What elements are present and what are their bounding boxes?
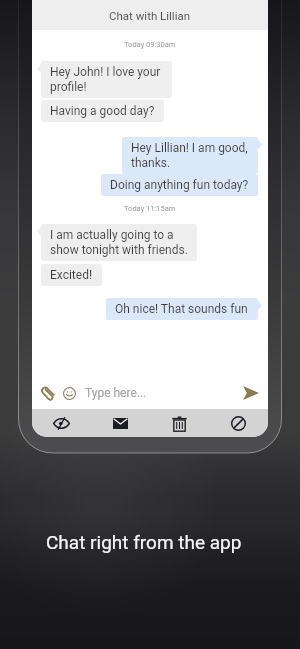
button[interactable]: Excited! <box>41 264 102 286</box>
button[interactable]: I am actually going to a show tonight wi… <box>41 224 197 261</box>
button[interactable]: Delete <box>150 409 209 437</box>
button[interactable]: Hey Lillian! I am good, thanks. <box>122 137 258 174</box>
button[interactable]: Hide <box>32 409 91 437</box>
button[interactable]: Messages <box>91 409 150 437</box>
staticText: Having a good day? <box>50 104 155 118</box>
staticText: Type here... <box>85 386 147 400</box>
button[interactable]: Send <box>240 382 262 404</box>
button[interactable]: Doing anything fun today? <box>101 174 258 196</box>
button[interactable]: Hey John! I love your profile! <box>41 61 172 98</box>
staticText: Excited! <box>50 268 93 282</box>
button[interactable]: Attach file <box>38 383 58 403</box>
staticText: Today 09:30am <box>124 40 176 49</box>
staticText: Hey John! I love your profile! <box>50 65 163 94</box>
staticText: Chat right from the app <box>46 531 242 553</box>
staticText: Chat with Lillian <box>109 9 191 22</box>
button[interactable]: Having a good day? <box>41 100 164 122</box>
staticText: Oh nice! That sounds fun <box>115 302 248 316</box>
staticText: Doing anything fun today? <box>110 178 249 192</box>
staticText: I am actually going to a show tonight wi… <box>50 228 188 257</box>
staticText: Hey Lillian! I am good, thanks. <box>131 141 249 170</box>
staticText: Today 11:15am <box>124 204 176 213</box>
button[interactable]: Emoji <box>59 383 79 403</box>
button[interactable]: Block <box>209 409 268 437</box>
button[interactable]: Oh nice! That sounds fun <box>106 298 258 320</box>
